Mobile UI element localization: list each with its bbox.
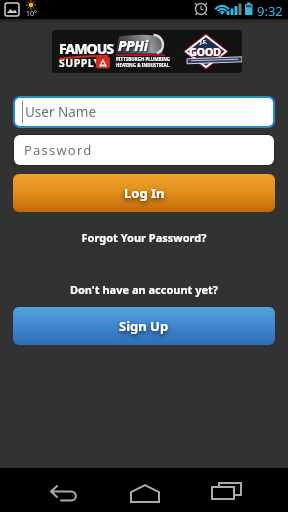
staticText: PITTSBURGH PLUMBING (116, 56, 171, 62)
staticText: User Name (25, 103, 97, 121)
staticText: HEATING & INDUSTRIAL (116, 62, 170, 68)
staticText: Sign Up (119, 317, 169, 335)
staticText: 9:32 (257, 2, 283, 20)
staticText: PPHi (118, 36, 148, 55)
staticText: SUPPLY (59, 56, 101, 70)
staticText: Password (24, 141, 93, 159)
staticText: GOOD (189, 44, 221, 59)
staticText: Don't have an account yet? (0, 282, 288, 297)
staticText: 10° (26, 9, 38, 19)
staticText: J.F. (200, 39, 207, 46)
staticText: Forgot Your Password? (0, 230, 288, 245)
staticText: Log In (124, 184, 165, 202)
staticText: FAMOUS (59, 39, 114, 58)
